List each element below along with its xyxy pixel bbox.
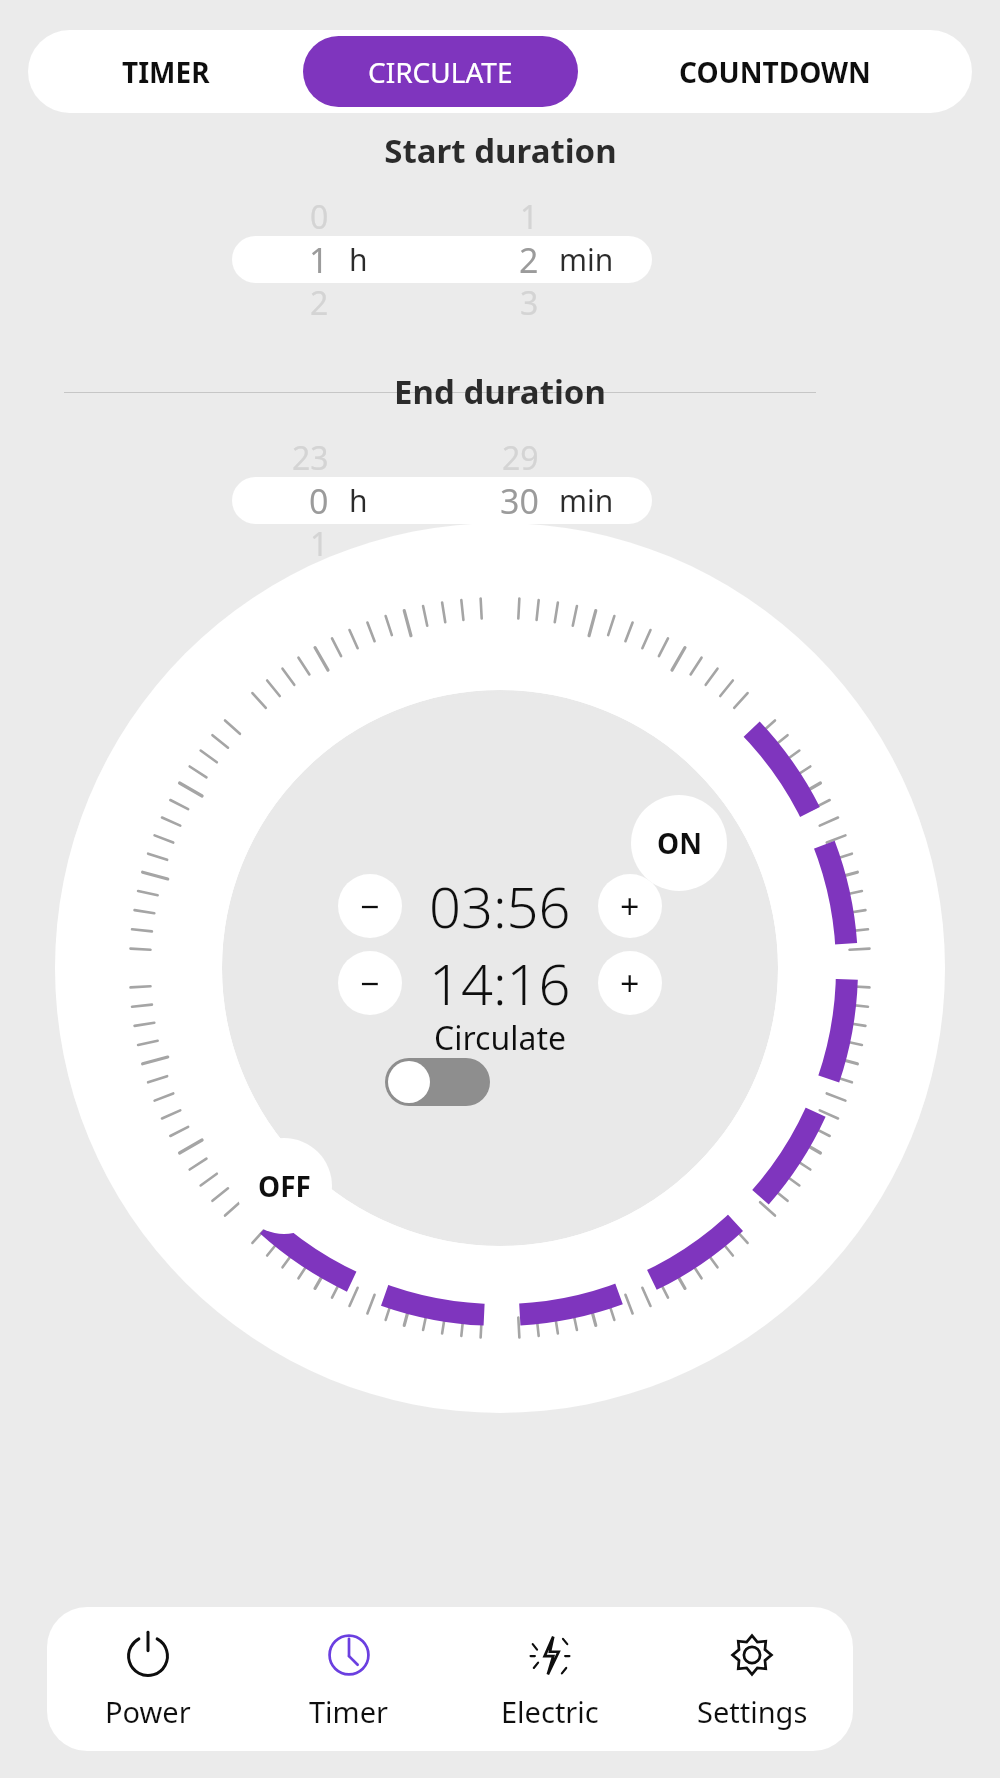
staticText: ON xyxy=(657,824,702,862)
button[interactable]: Increase xyxy=(598,874,662,938)
button[interactable]: Timer xyxy=(248,1607,449,1751)
button[interactable]: Power xyxy=(47,1607,248,1751)
button[interactable]: COUNTDOWN xyxy=(578,30,972,113)
staticText: h xyxy=(349,239,368,280)
button[interactable]: Settings xyxy=(651,1607,853,1751)
staticText: min xyxy=(559,480,614,521)
staticText: OFF xyxy=(258,1167,311,1205)
staticText: Electric xyxy=(501,1692,599,1731)
staticText: 1 xyxy=(520,195,539,239)
staticText: 29 xyxy=(502,436,539,480)
staticText: − xyxy=(360,960,380,1006)
staticText: TIMER xyxy=(122,53,210,91)
staticText: Circulate xyxy=(434,1016,567,1060)
staticText: 2 xyxy=(310,281,329,325)
button[interactable]: TIMER xyxy=(28,30,303,113)
staticText: End duration xyxy=(394,369,606,414)
button[interactable]: 0 xyxy=(232,477,652,524)
staticText: 1 xyxy=(309,237,329,283)
button[interactable]: CIRCULATE xyxy=(303,36,578,107)
button[interactable]: Electric xyxy=(449,1607,651,1751)
staticText: Power xyxy=(105,1692,191,1731)
staticText: 0 xyxy=(310,195,329,239)
staticText: + xyxy=(620,960,640,1006)
button[interactable]: OFF xyxy=(236,1138,332,1234)
staticText: 30 xyxy=(500,478,539,524)
button[interactable]: ON xyxy=(631,795,727,891)
staticText: − xyxy=(360,883,380,929)
staticText: + xyxy=(620,883,640,929)
staticText: COUNTDOWN xyxy=(679,53,871,91)
staticText: Settings xyxy=(697,1692,808,1731)
staticText: 23 xyxy=(292,436,329,480)
button[interactable]: 1 xyxy=(232,236,652,283)
staticText: Start duration xyxy=(384,128,617,173)
staticText: Timer xyxy=(309,1692,389,1731)
button[interactable]: Decrease xyxy=(338,874,402,938)
button[interactable]: Circulate toggle xyxy=(385,1058,490,1106)
staticText: min xyxy=(559,239,614,280)
staticText: 1 xyxy=(310,522,329,566)
staticText: 0 xyxy=(309,478,329,524)
staticText: 3 xyxy=(520,281,539,325)
staticText: 14:16 xyxy=(429,945,571,1021)
button[interactable]: Increase xyxy=(598,951,662,1015)
staticText: 2 xyxy=(519,237,539,283)
button[interactable]: Decrease xyxy=(338,951,402,1015)
staticText: 03:56 xyxy=(429,868,571,944)
staticText: CIRCULATE xyxy=(368,53,513,91)
staticText: h xyxy=(349,480,368,521)
